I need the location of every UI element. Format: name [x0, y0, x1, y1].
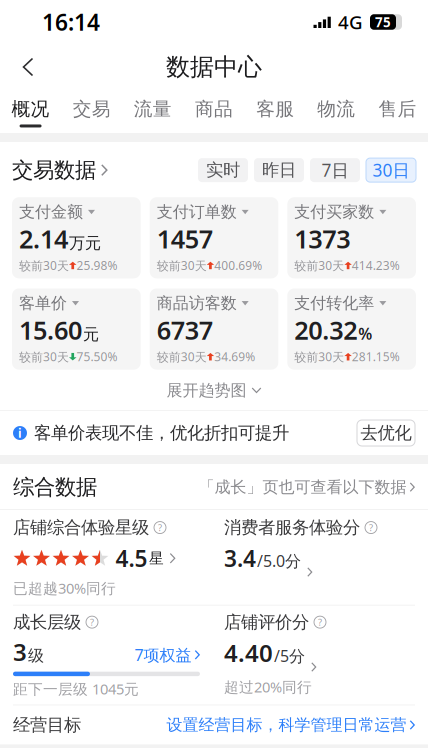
staticText: 店铺综合体验星级 [13, 517, 149, 538]
staticText: 7日 [321, 159, 348, 182]
staticText: 物流 [317, 97, 355, 120]
staticText: 消费者服务体验分 [224, 517, 360, 538]
staticText: 较前30天 [294, 349, 344, 365]
staticText: 2.14 [19, 222, 68, 255]
staticText: 商品访客数 [157, 293, 237, 313]
staticText: i [18, 425, 22, 441]
staticText: 客单价 [19, 293, 67, 313]
staticText: 数据中心 [166, 52, 262, 82]
staticText: 4G [338, 10, 363, 34]
staticText: 成长层级 [13, 611, 81, 633]
staticText: % [358, 323, 372, 344]
staticText: 设置经营目标，科学管理日常运营 [166, 715, 406, 735]
staticText: 售后 [378, 97, 416, 120]
staticText: 414.23% [352, 257, 400, 273]
staticText: 7项权益 [134, 644, 191, 665]
button[interactable]: 物流 [306, 88, 367, 134]
staticText: 20.32 [294, 313, 357, 347]
staticText: 较前30天 [294, 257, 344, 273]
staticText: 商品 [195, 97, 233, 120]
staticText: 交易数据 [12, 157, 96, 183]
staticText: 概况 [12, 97, 50, 120]
staticText: 支付转化率 [294, 293, 374, 313]
staticText: 15.60 [19, 313, 82, 347]
button[interactable]: 售后 [367, 88, 428, 134]
staticText: 「成长」页也可查看以下数据 [198, 477, 406, 497]
button[interactable]: 7项权益 [134, 644, 200, 665]
staticText: 4.5 [115, 543, 147, 573]
button[interactable]: 7日 [310, 158, 360, 182]
staticText: 30日 [372, 159, 409, 182]
button[interactable]: 去优化 [357, 420, 415, 446]
button[interactable]: 实时 [198, 158, 248, 182]
staticText: ? [318, 616, 322, 628]
staticText: 支付买家数 [294, 202, 374, 222]
staticText: 客服 [256, 97, 294, 120]
staticText: 超过20%同行 [224, 677, 312, 696]
staticText: ? [369, 521, 373, 534]
staticText: 级 [28, 646, 44, 666]
button[interactable]: 交易数据 [12, 155, 108, 185]
staticText: 经营目标 [13, 714, 81, 736]
staticText: 支付订单数 [157, 202, 237, 222]
staticText: ? [158, 521, 162, 534]
staticText: 16:14 [42, 7, 100, 37]
staticText: 元 [83, 325, 99, 344]
staticText: 昨日 [262, 159, 296, 181]
staticText: 距下一层级 1045元 [13, 679, 139, 699]
staticText: 较前30天 [157, 349, 207, 365]
button[interactable]: 30日 [366, 158, 416, 182]
button[interactable]: 昨日 [254, 158, 304, 182]
staticText: 交易 [73, 97, 111, 120]
button[interactable]: 流量 [122, 88, 183, 134]
staticText: 281.15% [352, 349, 400, 365]
staticText: 综合数据 [13, 474, 97, 500]
staticText: 星 [149, 549, 164, 567]
staticText: 较前30天 [19, 257, 69, 273]
staticText: 店铺评价分 [224, 611, 309, 633]
staticText: 6737 [157, 313, 213, 347]
staticText: 万元 [69, 233, 101, 253]
button[interactable]: 客服 [245, 88, 306, 134]
staticText: 1373 [294, 222, 350, 255]
button[interactable]: 展开趋势图 [0, 370, 428, 410]
staticText: /5.0分 [257, 550, 301, 571]
button[interactable]: 概况 [0, 88, 61, 134]
staticText: 75 [375, 13, 391, 31]
staticText: 400.69% [214, 257, 262, 273]
staticText: /5分 [274, 645, 305, 666]
button[interactable]: 设置经营目标，科学管理日常运营 [166, 715, 415, 735]
staticText: 25.98% [76, 257, 117, 273]
staticText: 已超越30%同行 [13, 578, 116, 598]
staticText: 4.40 [224, 637, 273, 669]
button[interactable]: 3.4 [224, 543, 312, 577]
staticText: 75.50% [76, 349, 117, 365]
staticText: 展开趋势图 [166, 381, 246, 400]
staticText: 3.4 [224, 543, 256, 573]
staticText: 3 [13, 636, 27, 668]
button[interactable]: 返回 [0, 48, 48, 85]
staticText: 较前30天 [19, 349, 69, 365]
button[interactable]: 4.40 [224, 637, 316, 672]
staticText: 流量 [134, 97, 172, 120]
staticText: 客单价表现不佳，优化折扣可提升 [34, 422, 289, 444]
staticText: 实时 [206, 159, 240, 181]
staticText: 去优化 [360, 422, 411, 444]
staticText: 1457 [157, 222, 213, 255]
button[interactable]: 「成长」页也可查看以下数据 [198, 477, 415, 497]
staticText: 34.69% [214, 349, 255, 365]
staticText: ? [90, 616, 94, 628]
button[interactable]: 交易 [61, 88, 122, 134]
button[interactable]: 商品 [183, 88, 244, 134]
button[interactable]: 4.5 [13, 543, 176, 573]
staticText: 支付金额 [19, 202, 83, 222]
staticText: 较前30天 [157, 257, 207, 273]
